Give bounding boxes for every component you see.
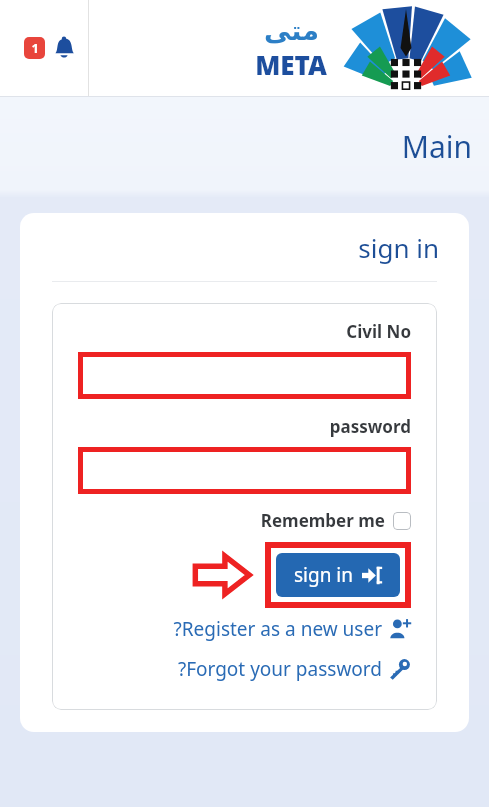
button[interactable] <box>78 447 411 494</box>
staticText: Civil No <box>346 320 411 343</box>
button[interactable]: ?Register as a new user <box>78 616 411 642</box>
staticText: Main <box>401 126 472 167</box>
staticText: sign in <box>293 562 353 588</box>
staticText: متى <box>263 15 319 46</box>
staticText: Remember me <box>260 509 385 532</box>
button[interactable]: ?Forgot your password <box>78 656 411 682</box>
staticText: sign in <box>358 230 439 265</box>
staticText: ?Forgot your password <box>177 656 382 682</box>
staticText: password <box>329 415 411 438</box>
staticText: ?Register as a new user <box>173 616 382 642</box>
button[interactable]: Notifications <box>20 31 81 65</box>
button[interactable]: Remember me <box>78 509 411 532</box>
staticText: 1 <box>31 39 39 57</box>
button[interactable]: sign in <box>276 553 400 597</box>
staticText: META <box>255 47 327 82</box>
button[interactable] <box>78 352 411 399</box>
